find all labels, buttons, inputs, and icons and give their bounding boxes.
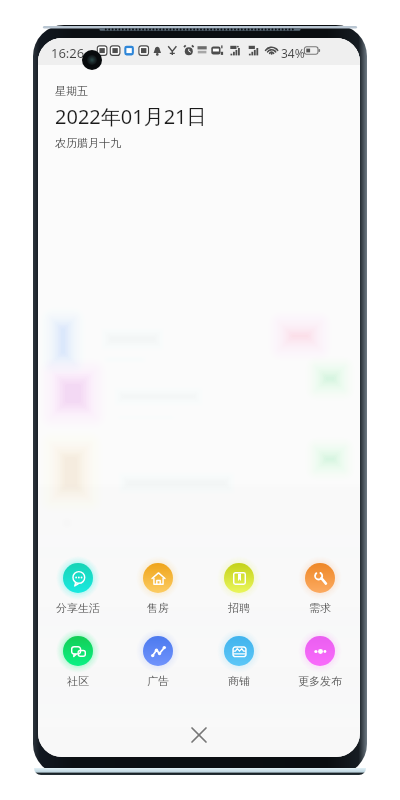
- button[interactable]: 招聘: [198, 556, 279, 615]
- staticText: 农历腊月十九: [55, 136, 121, 150]
- button[interactable]: 售房: [118, 556, 198, 615]
- staticText: 招聘: [228, 601, 250, 615]
- staticText: 34%: [281, 45, 305, 61]
- staticText: 分享生活: [56, 601, 100, 615]
- button[interactable]: 更多发布: [279, 629, 360, 688]
- staticText: 售房: [147, 601, 169, 615]
- staticText: 商铺: [228, 674, 250, 688]
- button[interactable]: 广告: [118, 629, 198, 688]
- staticText: 16:26: [51, 44, 85, 62]
- staticText: 社区: [67, 674, 89, 688]
- staticText: 更多发布: [298, 674, 342, 688]
- button[interactable]: 分享生活: [38, 556, 118, 615]
- staticText: 需求: [309, 601, 331, 615]
- staticText: 星期五: [55, 84, 88, 98]
- button[interactable]: 商铺: [198, 629, 279, 688]
- staticText: 2022年01月21日: [55, 103, 207, 130]
- button[interactable]: Close: [184, 720, 214, 750]
- button[interactable]: 需求: [279, 556, 360, 615]
- button[interactable]: 社区: [38, 629, 118, 688]
- staticText: 广告: [147, 674, 169, 688]
